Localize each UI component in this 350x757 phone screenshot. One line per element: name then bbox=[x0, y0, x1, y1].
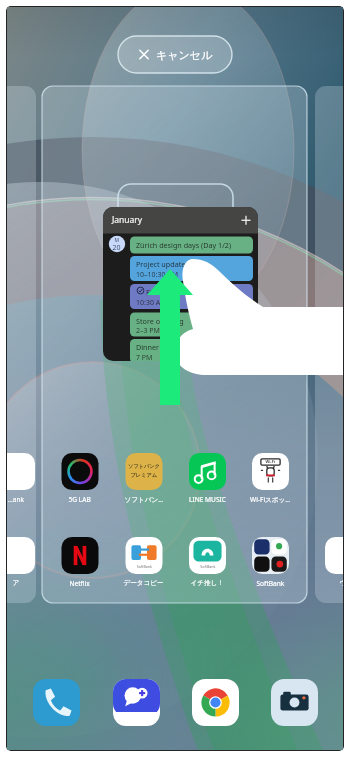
button[interactable]: Phone bbox=[33, 678, 81, 726]
button[interactable]: Messages bbox=[113, 678, 161, 726]
button[interactable]: Data copy bbox=[125, 536, 163, 586]
button[interactable]: Ichioshi bbox=[189, 536, 227, 586]
button[interactable]: Chrome bbox=[192, 678, 240, 726]
button[interactable]: LINE MUSIC bbox=[189, 452, 227, 502]
button[interactable]: SoftBank Premium bbox=[125, 452, 163, 502]
button[interactable]: Calendar widget bbox=[103, 207, 258, 361]
button[interactable]: Camera bbox=[271, 678, 319, 726]
button[interactable]: Netflix bbox=[61, 536, 99, 586]
button[interactable]: Cancel bbox=[118, 36, 232, 73]
button[interactable]: SoftBank bbox=[252, 536, 290, 586]
button[interactable]: 5G LAB bbox=[61, 452, 99, 502]
button[interactable]: Wi-Fi spot bbox=[252, 452, 290, 502]
